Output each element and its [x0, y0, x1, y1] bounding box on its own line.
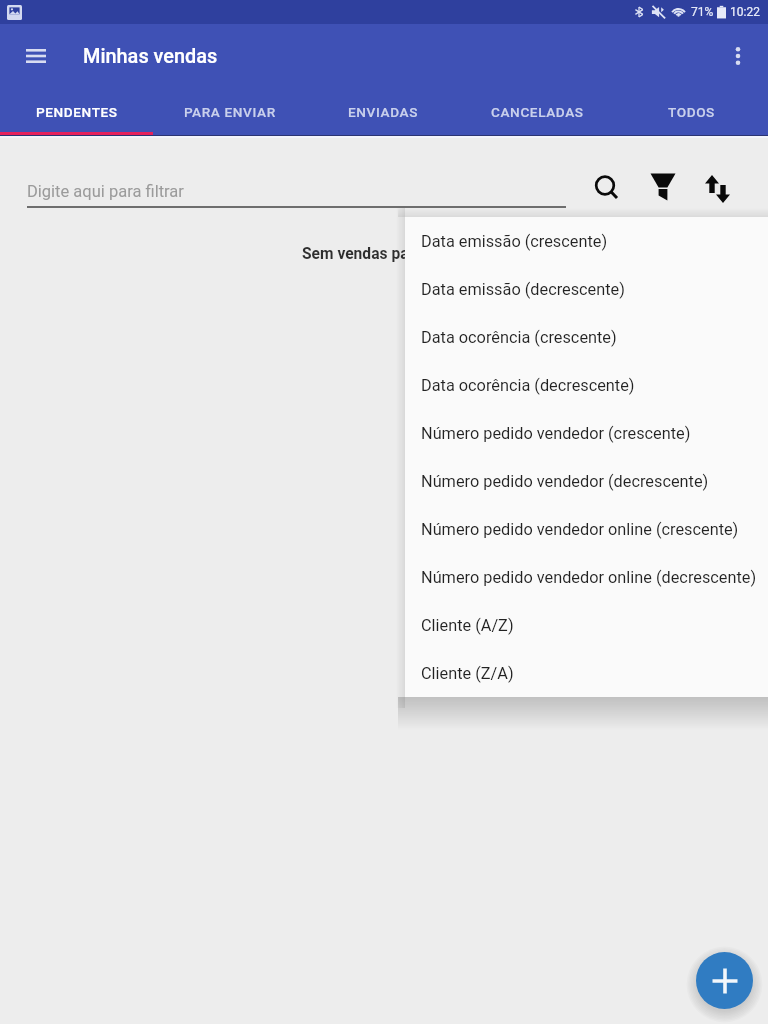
staticText: Data ocorência (decrescente) [421, 376, 635, 395]
staticText: Número pedido vendedor (decrescente) [421, 472, 709, 491]
staticText: PENDENTES [36, 104, 118, 120]
staticText: ENVIADAS [348, 104, 418, 120]
staticText: Minhas vendas [83, 45, 218, 68]
staticText: Número pedido vendedor online (crescente… [421, 520, 739, 539]
button[interactable]: Ordenar [696, 168, 737, 209]
staticText: TODOS [668, 104, 715, 120]
button[interactable]: Data emissão (crescente) [405, 217, 768, 265]
button[interactable]: Data ocorência (crescente) [405, 313, 768, 361]
button[interactable]: Cliente (Z/A) [405, 649, 768, 697]
button[interactable]: Número pedido vendedor (decrescente) [405, 457, 768, 505]
staticText: Cliente (A/Z) [421, 616, 514, 635]
button[interactable]: Mais opções [714, 32, 762, 80]
button[interactable]: CANCELADAS [460, 88, 614, 135]
staticText: CANCELADAS [491, 104, 584, 120]
button[interactable]: PARA ENVIAR [153, 88, 306, 135]
staticText: Data emissão (crescente) [421, 232, 608, 251]
button[interactable]: Abrir menu de navegação [12, 32, 60, 80]
button[interactable]: Data emissão (decrescente) [405, 265, 768, 313]
staticText: Data ocorência (crescente) [421, 328, 617, 347]
staticText: PARA ENVIAR [184, 104, 276, 120]
button[interactable]: TODOS [614, 88, 768, 135]
staticText: Cliente (Z/A) [421, 664, 514, 683]
button[interactable]: Número pedido vendedor online (crescente… [405, 505, 768, 553]
button[interactable]: Número pedido vendedor (crescente) [405, 409, 768, 457]
staticText: Data emissão (decrescente) [421, 280, 625, 299]
button[interactable]: Filtrar [642, 166, 683, 207]
button[interactable]: Número pedido vendedor online (decrescen… [405, 553, 768, 601]
button[interactable]: Data ocorência (decrescente) [405, 361, 768, 409]
staticText: Número pedido vendedor (crescente) [421, 424, 691, 443]
button[interactable]: Cliente (A/Z) [405, 601, 768, 649]
button[interactable]: Adicionar venda [696, 952, 753, 1009]
staticText: 10:22 [730, 5, 760, 19]
staticText: Número pedido vendedor online (decrescen… [421, 568, 757, 587]
staticText: 71% [691, 5, 714, 19]
button[interactable]: ENVIADAS [306, 88, 460, 135]
staticText: Sem vendas para exibir [302, 245, 466, 263]
button[interactable]: Pesquisar [587, 168, 628, 209]
staticText: Digite aqui para filtrar [27, 182, 184, 201]
button[interactable]: PENDENTES [0, 88, 153, 135]
